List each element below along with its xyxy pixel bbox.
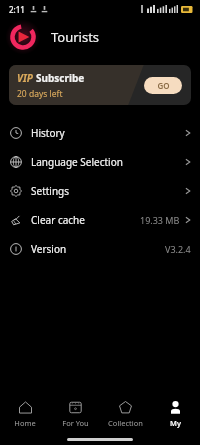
button[interactable]: For You xyxy=(50,395,100,433)
staticText: Home xyxy=(14,418,36,428)
staticText: Language Selection xyxy=(31,155,123,169)
button[interactable]: Language Selection xyxy=(0,147,200,176)
button[interactable]: History xyxy=(0,118,200,147)
staticText: Settings xyxy=(31,184,70,198)
staticText: Version xyxy=(31,242,67,256)
staticText: Subscribe xyxy=(36,71,85,85)
staticText: VIP xyxy=(17,71,33,85)
button[interactable]: My xyxy=(150,395,200,433)
staticText: 19.33 MB xyxy=(140,214,180,226)
staticText: My xyxy=(170,418,181,428)
staticText: V3.2.4 xyxy=(165,243,191,255)
staticText: 20 days left xyxy=(17,88,63,100)
button[interactable]: Collection xyxy=(100,395,150,433)
button[interactable]: Settings xyxy=(0,176,200,205)
button[interactable]: VIP xyxy=(9,65,191,105)
button[interactable]: GO xyxy=(144,77,182,94)
staticText: Tourists xyxy=(51,28,100,46)
staticText: Collection xyxy=(108,418,143,428)
button[interactable]: Clear cache xyxy=(0,205,200,234)
staticText: Clear cache xyxy=(31,213,85,227)
staticText: History xyxy=(31,126,65,140)
button[interactable]: Home xyxy=(0,395,50,433)
staticText: For You xyxy=(62,418,89,428)
staticText: GO xyxy=(157,80,170,91)
button[interactable]: Version xyxy=(0,234,200,263)
staticText: 2:11 xyxy=(9,4,25,15)
